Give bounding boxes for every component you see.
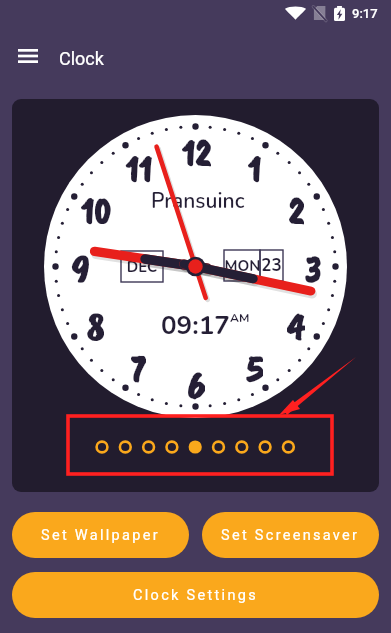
staticText: 2 <box>288 188 304 228</box>
staticText: 9 <box>71 246 89 286</box>
button[interactable]: Set Wallpaper <box>12 512 189 558</box>
staticText: Set Wallpaper <box>41 527 160 544</box>
staticText: 5 <box>246 346 263 386</box>
staticText: 12 <box>181 130 211 170</box>
staticText: 7 <box>131 346 146 386</box>
staticText: 10 <box>80 188 111 228</box>
staticText: 8 <box>86 304 104 344</box>
button[interactable]: Open navigation menu <box>9 37 47 75</box>
staticText: Clock <box>59 48 104 69</box>
staticText: 11 <box>125 146 152 186</box>
button[interactable]: Set Screensaver <box>202 512 379 558</box>
staticText: MON <box>224 256 260 276</box>
staticText: AM <box>230 310 250 326</box>
staticText: 09:17 <box>161 308 230 338</box>
staticText: 9:17 <box>352 6 378 21</box>
staticText: 3 <box>304 246 321 286</box>
staticText: Clock Settings <box>133 587 258 604</box>
staticText: 6 <box>187 362 205 402</box>
staticText: Set Screensaver <box>221 527 360 544</box>
staticText: 23 <box>260 254 283 277</box>
staticText: DEC <box>121 257 163 277</box>
button[interactable]: Clock Settings <box>12 572 379 618</box>
staticText: 1 <box>247 146 261 186</box>
staticText: Pransuinc <box>151 187 245 213</box>
staticText: 4 <box>287 304 305 344</box>
